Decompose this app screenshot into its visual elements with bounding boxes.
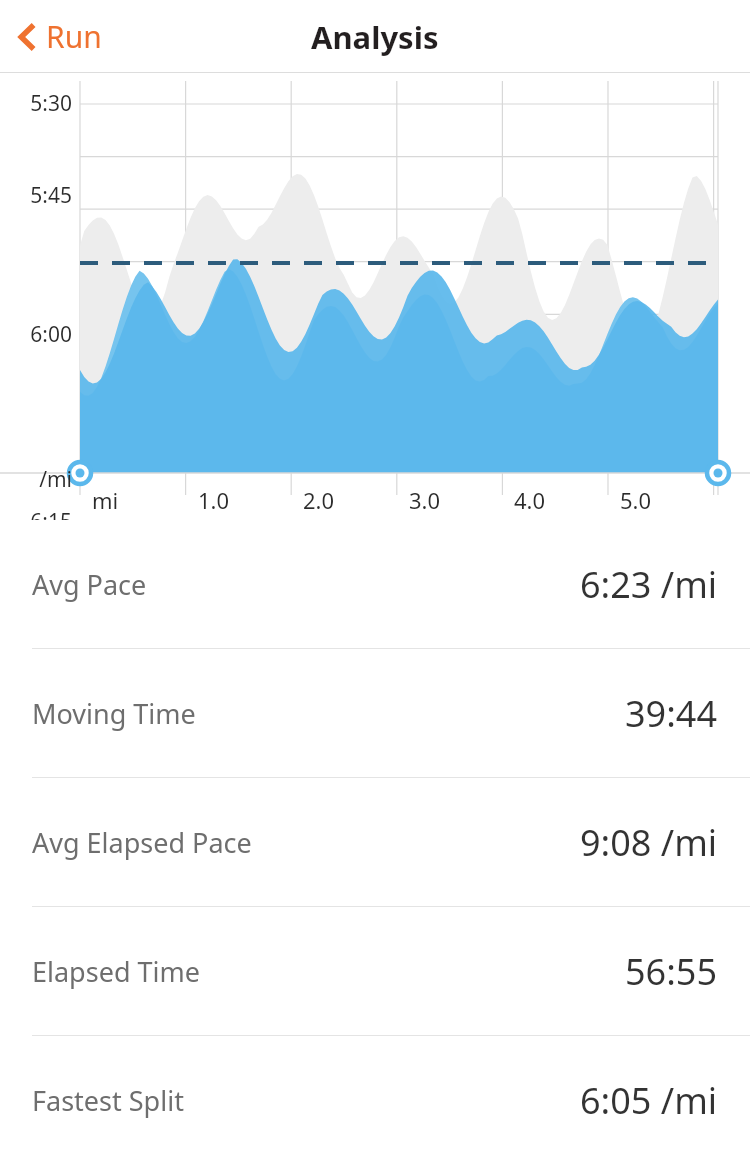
staticText: 6:05 /mi [580,1076,718,1125]
staticText: 5:45 [0,181,72,210]
staticText: Moving Time [32,695,196,732]
staticText: Analysis [311,16,439,58]
staticText: mi [92,485,119,515]
button[interactable]: Fastest Split [0,1036,750,1164]
staticText: 9:08 /mi [580,818,718,867]
staticText: 39:44 [625,689,718,738]
staticText: /mi [0,465,72,494]
button[interactable]: Avg Elapsed Pace [0,778,750,906]
button[interactable]: Avg Pace [0,520,750,648]
button[interactable]: Elapsed Time [0,907,750,1035]
staticText: 5:30 [0,89,72,118]
staticText: 1.0 [198,485,230,515]
staticText: 3.0 [409,485,441,515]
staticText: 56:55 [625,947,718,996]
staticText: 4.0 [514,485,546,515]
staticText: Elapsed Time [32,953,200,990]
button[interactable]: Moving Time [0,649,750,777]
staticText: Fastest Split [32,1082,184,1119]
staticText: 2.0 [303,485,335,515]
staticText: Avg Pace [32,566,147,603]
staticText: Run [46,16,102,57]
other: Back [18,22,38,52]
button[interactable]: Back [14,10,106,63]
staticText: 6:15 [0,507,72,520]
staticText: 6:23 /mi [580,560,718,609]
staticText: 5.0 [620,485,652,515]
staticText: 6:00 [0,320,72,349]
staticText: Avg Elapsed Pace [32,824,252,861]
